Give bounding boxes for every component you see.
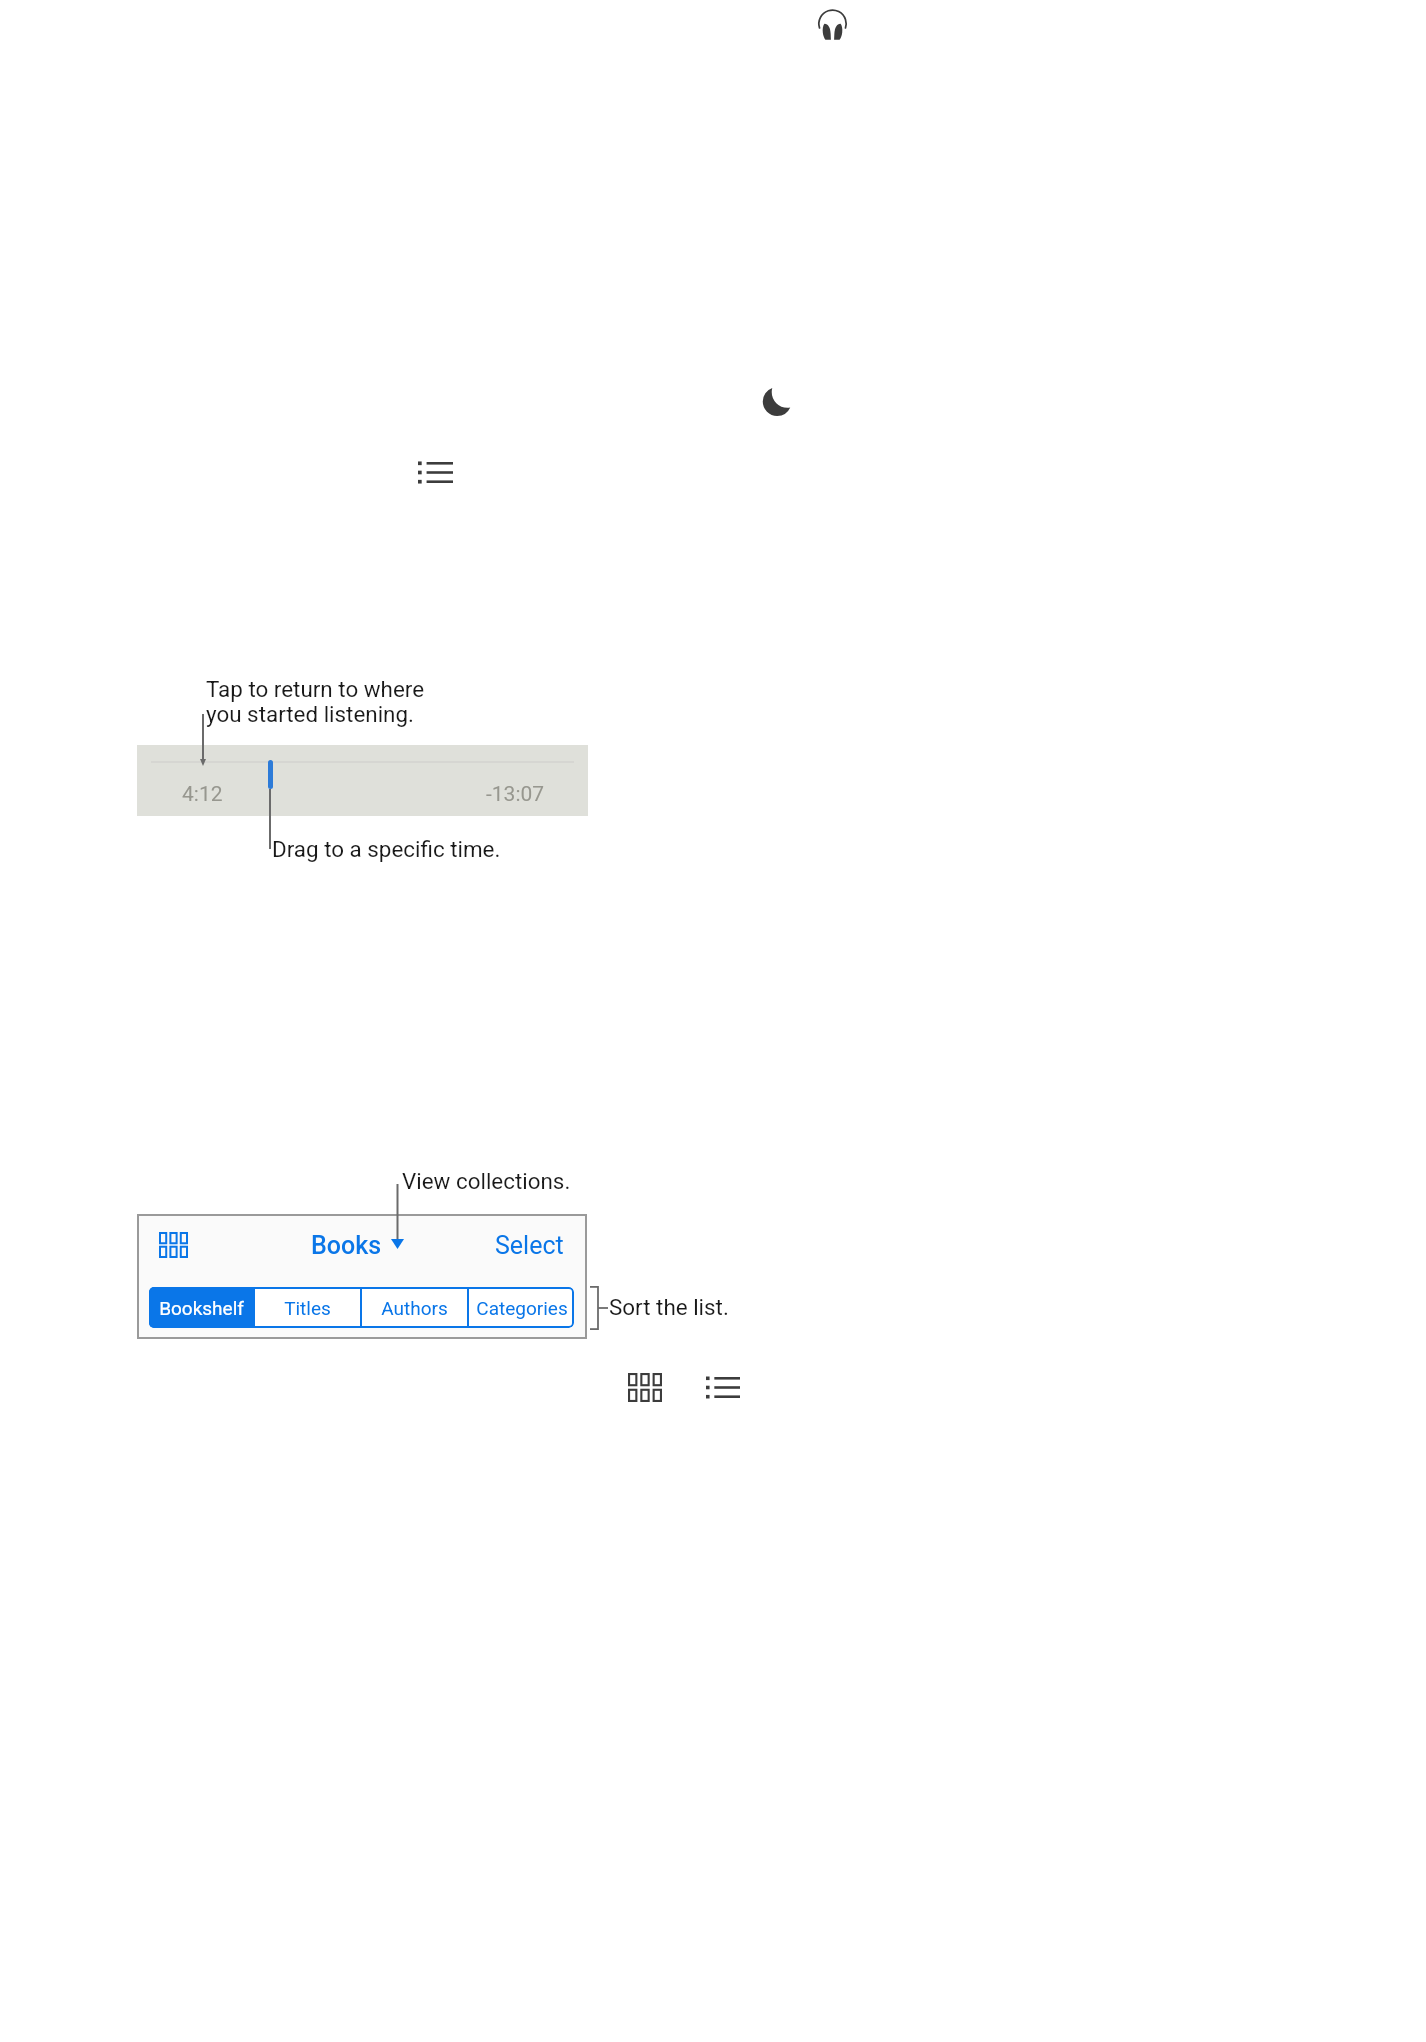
staticText: Categories — [476, 1297, 568, 1319]
button[interactable]: Headphones — [818, 9, 847, 40]
button[interactable]: Categories — [469, 1287, 574, 1328]
staticText: 4:12 — [182, 782, 223, 807]
button[interactable]: Grid view — [628, 1373, 662, 1402]
staticText: Books — [311, 1231, 382, 1260]
button[interactable]: Select — [495, 1231, 564, 1260]
staticText: Tap to return to where you started liste… — [206, 676, 425, 727]
button[interactable]: List view — [706, 1377, 740, 1398]
button[interactable]: Night theme — [761, 385, 793, 417]
staticText: -13:07 — [486, 782, 545, 807]
button[interactable]: List view — [418, 462, 453, 483]
staticText: Authors — [381, 1297, 448, 1319]
button[interactable]: 4:12 — [137, 745, 588, 816]
staticText: View collections. — [402, 1168, 571, 1194]
staticText: Bookshelf — [159, 1297, 244, 1319]
button[interactable]: Bookshelf — [149, 1287, 253, 1328]
staticText: Sort the list. — [609, 1294, 729, 1320]
button[interactable]: Books — [311, 1231, 395, 1260]
button[interactable]: Authors — [362, 1287, 467, 1328]
staticText: Titles — [284, 1297, 331, 1319]
button[interactable]: Titles — [255, 1287, 360, 1328]
button[interactable]: Collections — [159, 1232, 188, 1258]
staticText: Drag to a specific time. — [272, 836, 501, 862]
